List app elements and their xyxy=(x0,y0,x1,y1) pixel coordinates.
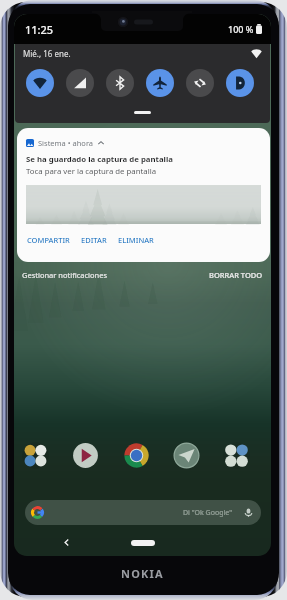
button[interactable]: Wi-Fi xyxy=(26,69,54,97)
staticText: EDITAR xyxy=(81,235,107,245)
button[interactable]: Home xyxy=(131,540,155,546)
button[interactable]: Chrome xyxy=(123,442,150,469)
button[interactable]: Airplane mode xyxy=(146,69,174,97)
button[interactable]: Gestionar notificaciones xyxy=(22,267,108,283)
button[interactable]: ELIMINAR xyxy=(114,232,158,248)
staticText: Sistema • ahora xyxy=(38,138,94,148)
button[interactable]: Bluetooth xyxy=(106,69,134,97)
staticText: Gestionar notificaciones xyxy=(22,270,108,280)
staticText: BORRAR TODO xyxy=(209,270,263,280)
staticText: 11:25 xyxy=(25,22,54,37)
button[interactable]: COMPARTIR xyxy=(23,232,74,248)
button[interactable]: Expand quick settings xyxy=(134,111,151,114)
staticText: COMPARTIR xyxy=(27,235,70,245)
staticText: ELIMINAR xyxy=(118,235,154,245)
button[interactable]: BORRAR TODO xyxy=(209,267,263,283)
staticText: 100 % xyxy=(228,23,254,35)
button[interactable]: Sistema • ahora xyxy=(17,128,270,262)
button[interactable]: Back xyxy=(60,537,72,548)
button[interactable]: Telegram xyxy=(173,442,200,469)
button[interactable]: Search xyxy=(25,500,261,525)
button[interactable]: Mobile data xyxy=(66,69,94,97)
button[interactable]: Play Store xyxy=(72,442,99,469)
staticText: Di "Ok Google" xyxy=(183,508,233,518)
button[interactable]: Google folder xyxy=(223,442,250,469)
button[interactable]: EDITAR xyxy=(77,232,111,248)
button[interactable]: Auto rotate xyxy=(186,69,214,97)
staticText: NOKIA xyxy=(121,566,164,581)
staticText: Se ha guardado la captura de pantalla xyxy=(26,154,173,165)
button[interactable]: Apps folder xyxy=(22,442,49,469)
staticText: Mié., 16 ene. xyxy=(23,48,71,59)
button[interactable]: Do not disturb xyxy=(226,69,254,97)
staticText: Toca para ver la captura de pantalla xyxy=(26,166,157,177)
